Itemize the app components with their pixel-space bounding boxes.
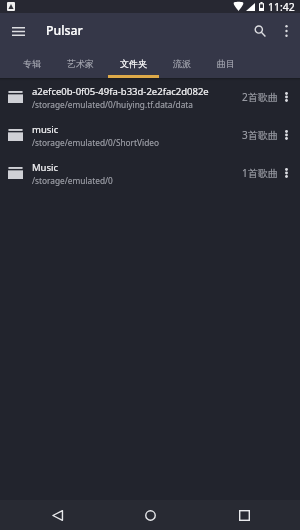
- button[interactable]: music: [0, 116, 300, 154]
- staticText: 曲目: [217, 58, 235, 69]
- staticText: a2efce0b-0f05-49fa-b33d-2e2fac2d082e: [32, 85, 209, 98]
- button[interactable]: Open navigation drawer: [6, 19, 30, 43]
- staticText: /storage/emulated/0/huiying.tf.data/data: [32, 99, 193, 110]
- button[interactable]: a2efce0b-0f05-49fa-b33d-2e2fac2d082e: [0, 78, 300, 116]
- button[interactable]: Recent apps: [229, 500, 259, 530]
- staticText: 11:42: [268, 0, 295, 13]
- button[interactable]: 艺术家: [54, 48, 107, 78]
- staticText: /storage/emulated/0/ShortVideo: [32, 137, 159, 148]
- button[interactable]: Music: [0, 154, 300, 192]
- button[interactable]: 文件夹: [107, 48, 160, 78]
- staticText: Music: [32, 161, 59, 174]
- staticText: 艺术家: [67, 58, 94, 69]
- staticText: 文件夹: [120, 58, 147, 69]
- staticText: Pulsar: [46, 22, 83, 39]
- staticText: 1首歌曲: [242, 166, 278, 180]
- button[interactable]: Folder options: [278, 78, 294, 116]
- button[interactable]: Search: [247, 18, 273, 44]
- staticText: 专辑: [23, 58, 41, 69]
- staticText: 流派: [173, 58, 191, 69]
- staticText: music: [32, 123, 59, 136]
- button[interactable]: 流派: [160, 48, 204, 78]
- button[interactable]: Back: [42, 500, 72, 530]
- staticText: /storage/emulated/0: [32, 175, 113, 186]
- staticText: 3首歌曲: [242, 128, 278, 142]
- button[interactable]: Folder options: [278, 116, 294, 154]
- button[interactable]: Folder options: [278, 154, 294, 192]
- button[interactable]: Home: [135, 500, 165, 530]
- button[interactable]: 专辑: [10, 48, 54, 78]
- staticText: 2首歌曲: [242, 90, 278, 104]
- button[interactable]: 曲目: [204, 48, 248, 78]
- button[interactable]: More options: [273, 18, 299, 44]
